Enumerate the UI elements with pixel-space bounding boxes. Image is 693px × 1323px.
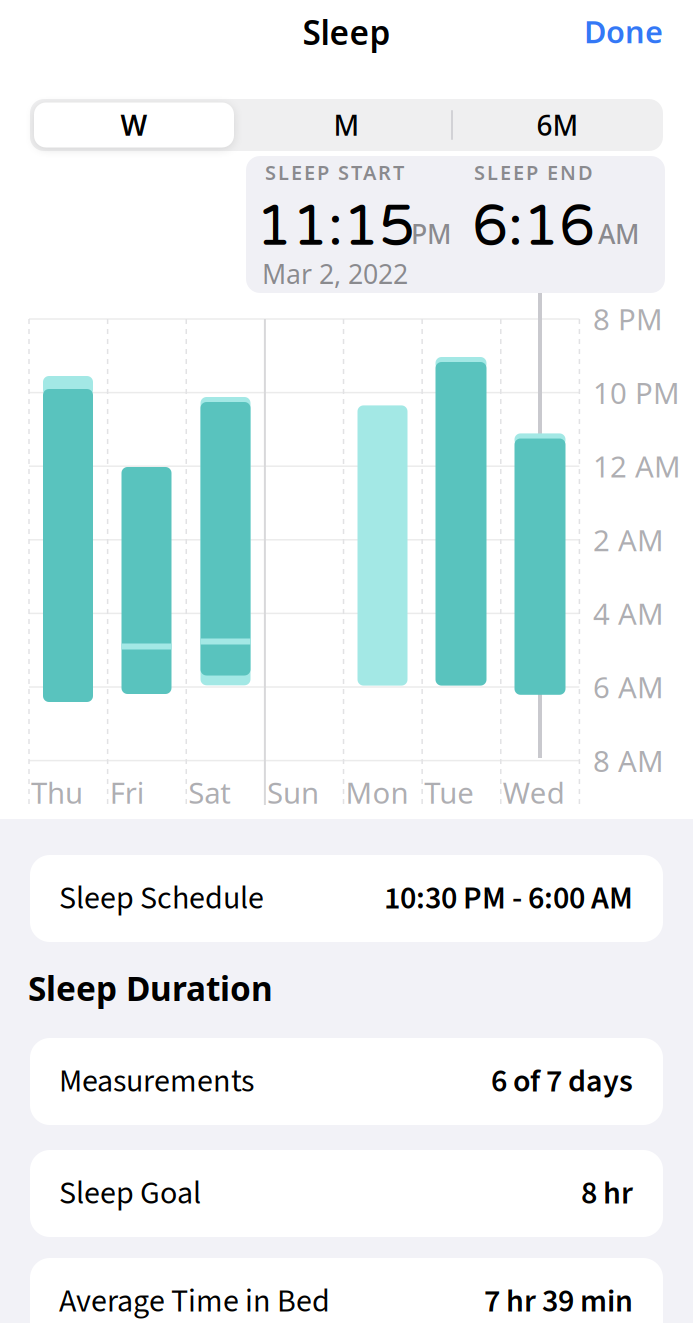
staticText: PM	[411, 216, 451, 251]
button[interactable]: 6M	[452, 99, 663, 151]
button[interactable]: M	[241, 99, 452, 151]
button[interactable]: W	[34, 102, 234, 147]
staticText: Done	[584, 11, 663, 52]
button[interactable]: Average Time in Bed	[30, 1258, 663, 1323]
staticText: 11:15	[256, 192, 415, 261]
staticText: 8 hr	[581, 1171, 633, 1216]
staticText: 6 of 7 days	[491, 1059, 633, 1104]
staticText: Tue	[424, 773, 474, 812]
button[interactable]: Sleep Goal	[30, 1150, 663, 1237]
staticText: Fri	[110, 773, 145, 812]
staticText: 4 AM	[593, 594, 664, 633]
staticText: SLEEP START	[265, 159, 404, 186]
staticText: Measurements	[59, 1059, 254, 1104]
button[interactable]: Done	[584, 11, 663, 52]
button[interactable]: Sleep Schedule	[30, 855, 663, 942]
staticText: Average Time in Bed	[59, 1279, 330, 1323]
staticText: Mon	[345, 773, 408, 812]
staticText: 6:16	[472, 192, 595, 261]
staticText: 6 AM	[593, 667, 664, 706]
staticText: Mar 2, 2022	[262, 256, 408, 291]
staticText: 8 PM	[593, 299, 663, 338]
staticText: M	[333, 106, 359, 144]
staticText: Sleep	[302, 10, 390, 54]
staticText: AM	[598, 216, 639, 251]
staticText: 8 AM	[593, 741, 664, 780]
staticText: 2 AM	[593, 520, 664, 559]
button[interactable]: Measurements	[30, 1038, 663, 1125]
staticText: Sun	[267, 773, 319, 812]
staticText: Sat	[188, 773, 231, 812]
staticText: SLEEP END	[474, 159, 593, 186]
staticText: Sleep Duration	[28, 966, 273, 1010]
staticText: 10:30 PM - 6:00 AM	[384, 876, 633, 921]
staticText: 10 PM	[593, 373, 680, 412]
staticText: W	[120, 106, 147, 144]
staticText: 7 hr 39 min	[484, 1279, 633, 1323]
staticText: Thu	[31, 773, 83, 812]
staticText: Sleep Schedule	[59, 876, 264, 921]
staticText: Sleep Goal	[59, 1171, 201, 1216]
staticText: Wed	[503, 773, 565, 812]
staticText: 6M	[536, 106, 578, 144]
staticText: 12 AM	[593, 447, 681, 486]
